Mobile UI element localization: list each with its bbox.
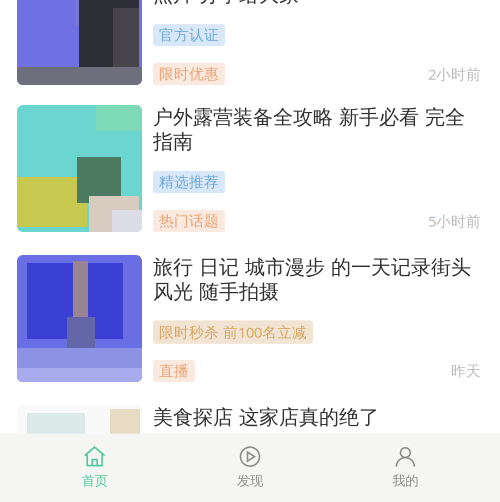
staticText: 城市夜景 灯火阑珊处 随手拍的一组照片 分享给大家: [153, 0, 465, 7]
button[interactable]: 我的: [328, 445, 483, 489]
staticText: 限时秒杀 前100名立减: [159, 322, 307, 342]
staticText: 2小时前: [428, 64, 481, 84]
button[interactable]: 发现: [172, 445, 328, 489]
staticText: 首页: [82, 473, 108, 489]
staticText: 直播: [159, 362, 189, 380]
button[interactable]: 户外露营装备全攻略 新手必看 完全指南: [0, 105, 481, 232]
staticText: 精选推荐: [159, 173, 219, 191]
staticText: 户外露营装备全攻略 新手必看 完全指南: [153, 105, 465, 154]
button[interactable]: 美食探店 这家店真的绝了: [0, 405, 481, 502]
staticText: 官方认证: [159, 26, 219, 44]
staticText: 5小时前: [428, 211, 481, 231]
button[interactable]: 旅行 日记 城市漫步 的一天记录街头风光 随手拍摄: [0, 255, 481, 382]
staticText: 热门话题: [159, 212, 219, 230]
button[interactable]: 城市夜景 灯火阑珊处 随手拍的一组照片 分享给大家: [0, 0, 481, 85]
staticText: 昨天: [451, 362, 481, 380]
staticText: 发现: [237, 473, 263, 489]
staticText: 我的: [392, 473, 418, 489]
staticText: 限时优惠: [159, 65, 219, 83]
button[interactable]: 首页: [17, 445, 172, 489]
staticText: 旅行 日记 城市漫步 的一天记录街头风光 随手拍摄: [153, 255, 471, 304]
staticText: 美食探店 这家店真的绝了: [153, 405, 379, 430]
